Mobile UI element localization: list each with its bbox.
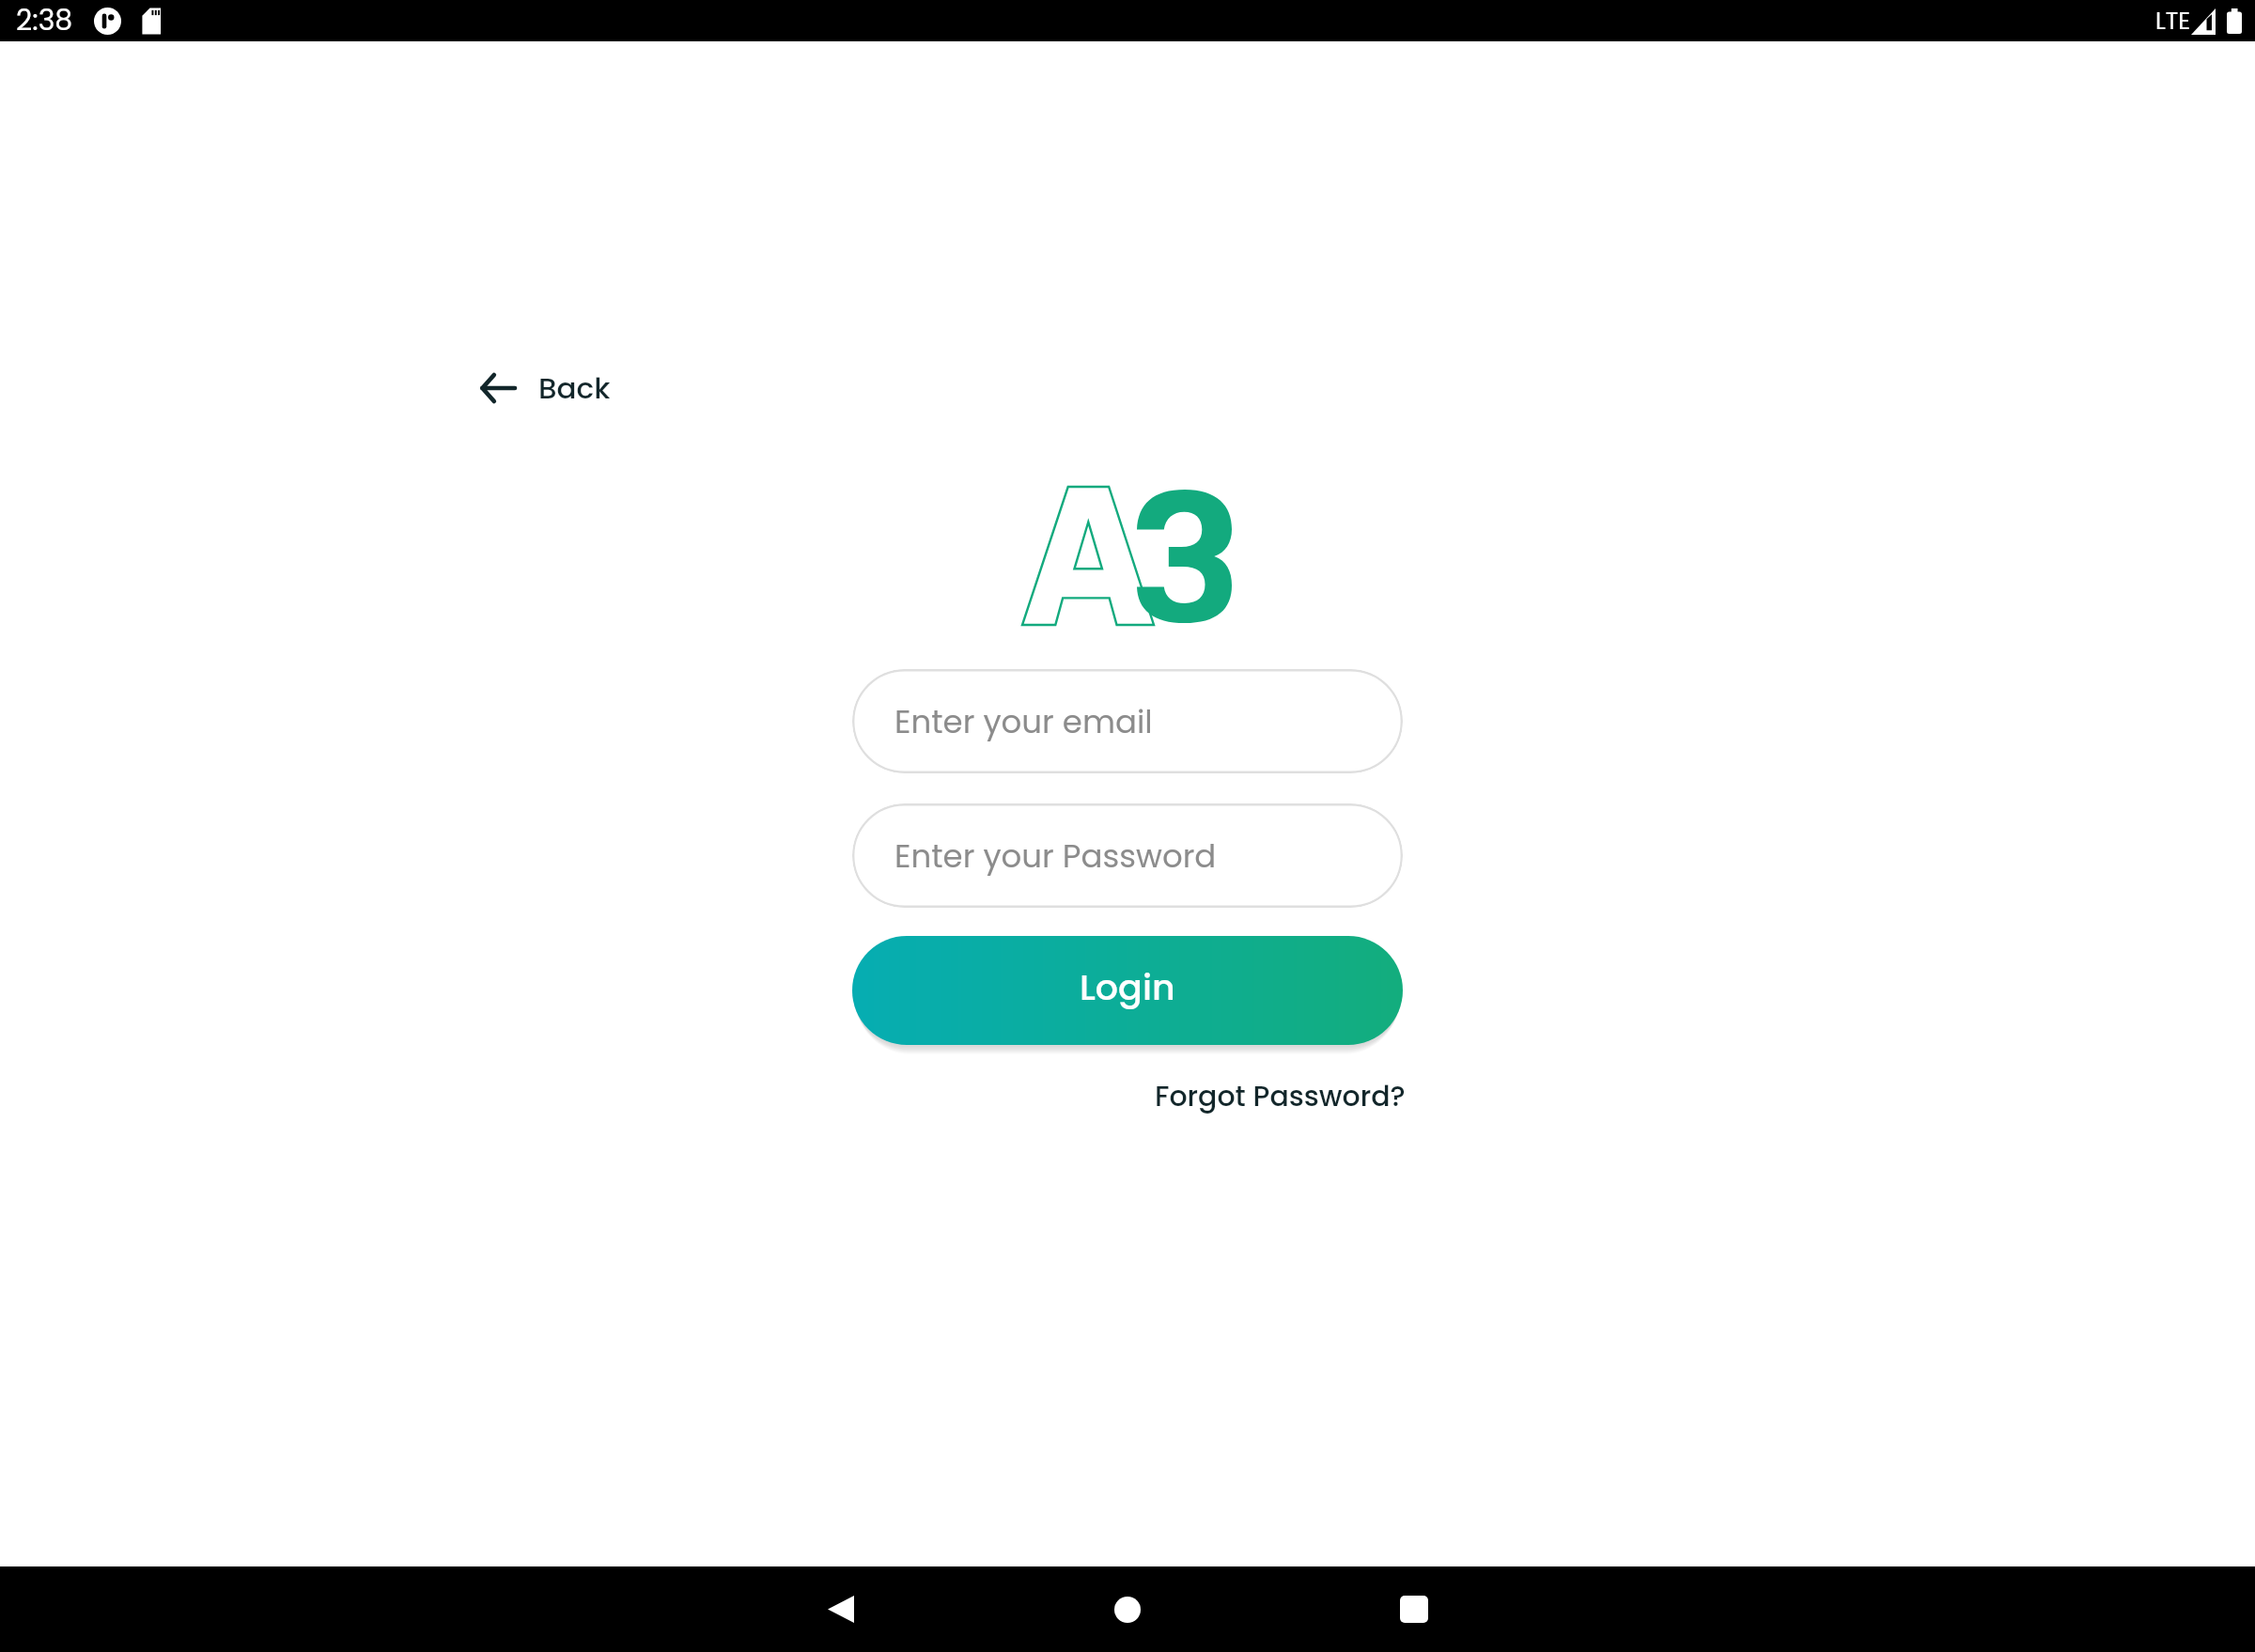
button[interactable]: Enter your Password: [852, 803, 1403, 908]
button[interactable]: Enter your email: [852, 669, 1403, 773]
button[interactable]: Recent apps: [1371, 1566, 1457, 1652]
button[interactable]: Login: [852, 936, 1403, 1045]
staticText: LTE: [2155, 5, 2191, 38]
button[interactable]: Back: [466, 353, 625, 422]
button[interactable]: Home: [1084, 1566, 1171, 1652]
staticText: Back: [538, 367, 611, 408]
button[interactable]: Back: [798, 1566, 884, 1652]
staticText: Enter your email: [894, 699, 1153, 744]
staticText: Forgot Password?: [1155, 1077, 1406, 1116]
staticText: Enter your Password: [894, 834, 1217, 879]
button[interactable]: Forgot Password?: [1155, 1077, 1406, 1116]
staticText: Login: [1080, 962, 1175, 1012]
staticText: 2:38: [16, 1, 73, 40]
